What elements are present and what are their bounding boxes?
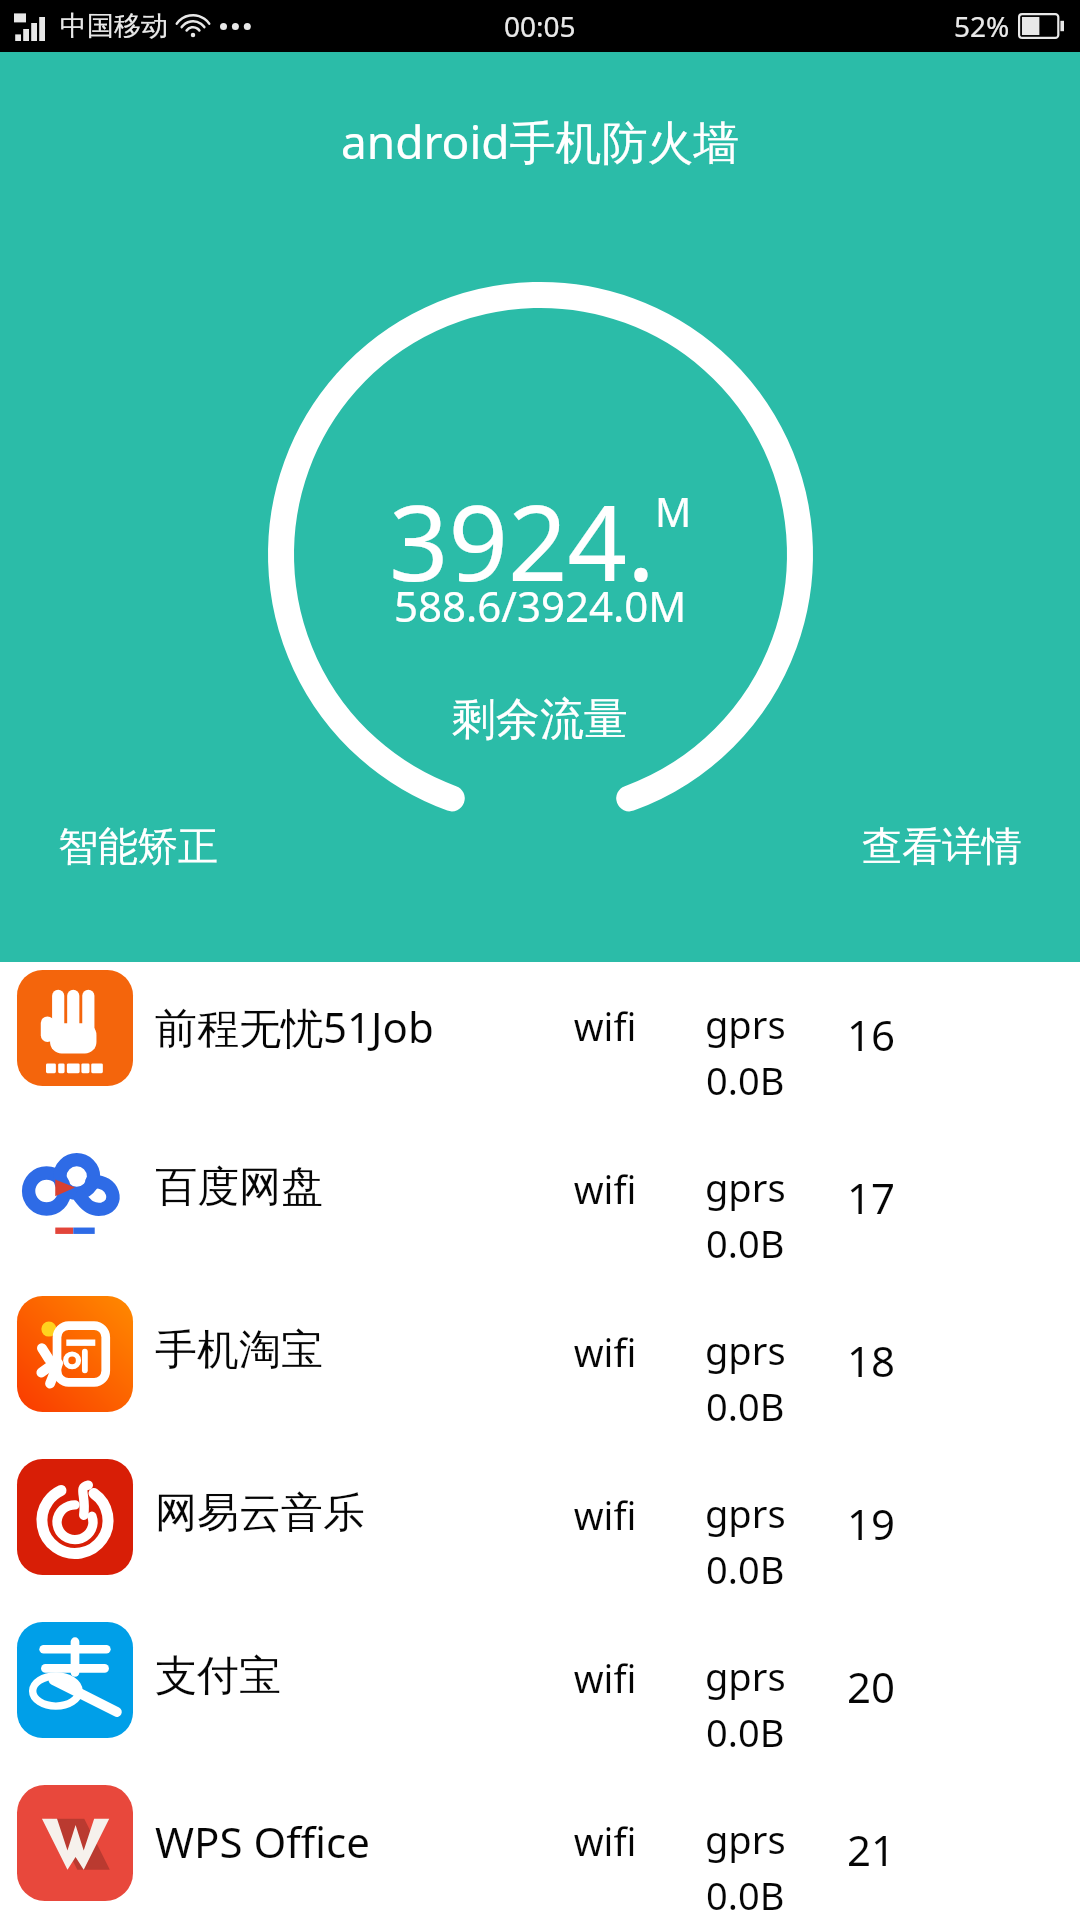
- button[interactable]: 百度网盘: [0, 1125, 1080, 1288]
- staticText: 支付宝: [155, 1650, 281, 1703]
- staticText: 19: [847, 1495, 896, 1552]
- staticText: 百度网盘: [155, 1161, 323, 1214]
- staticText: 0.0B: [706, 1380, 785, 1432]
- staticText: 3924.: [389, 470, 655, 612]
- staticText: gprs: [705, 998, 786, 1050]
- staticText: 20: [847, 1658, 896, 1715]
- staticText: 0.0B: [706, 1217, 785, 1269]
- staticText: 00:05: [504, 7, 576, 45]
- button[interactable]: 网易云音乐: [0, 1451, 1080, 1614]
- button[interactable]: 智能矫正: [24, 807, 252, 885]
- button[interactable]: WPS Office: [0, 1777, 1080, 1920]
- staticText: 手机淘宝: [155, 1324, 323, 1377]
- staticText: wifi: [545, 1489, 665, 1541]
- staticText: 0.0B: [706, 1869, 785, 1920]
- staticText: 0.0B: [706, 1054, 785, 1106]
- staticText: 查看详情: [862, 821, 1022, 871]
- staticText: 智能矫正: [58, 821, 218, 871]
- staticText: gprs: [705, 1487, 786, 1539]
- staticText: 网易云音乐: [155, 1487, 365, 1540]
- staticText: 21: [847, 1821, 896, 1878]
- button[interactable]: 前程无忧51Job: [0, 962, 1080, 1125]
- button[interactable]: 手机淘宝: [0, 1288, 1080, 1451]
- staticText: gprs: [705, 1650, 786, 1702]
- button[interactable]: 支付宝: [0, 1614, 1080, 1777]
- staticText: 16: [847, 1006, 896, 1063]
- button[interactable]: 查看详情: [828, 807, 1056, 885]
- staticText: 17: [847, 1169, 896, 1226]
- staticText: wifi: [545, 1326, 665, 1378]
- staticText: 中国移动: [60, 9, 168, 43]
- staticText: wifi: [545, 1163, 665, 1215]
- staticText: wifi: [545, 1000, 665, 1052]
- staticText: 52%: [954, 7, 1010, 45]
- staticText: gprs: [705, 1813, 786, 1865]
- staticText: 18: [847, 1332, 896, 1389]
- staticText: 0.0B: [706, 1543, 785, 1595]
- staticText: 前程无忧51Job: [155, 998, 434, 1055]
- staticText: wifi: [545, 1815, 665, 1867]
- staticText: android手机防火墙: [341, 110, 740, 173]
- staticText: 0.0B: [706, 1706, 785, 1758]
- staticText: gprs: [705, 1324, 786, 1376]
- staticText: wifi: [545, 1652, 665, 1704]
- staticText: 剩余流量: [452, 692, 628, 747]
- staticText: gprs: [705, 1161, 786, 1213]
- staticText: M: [655, 484, 692, 538]
- staticText: 588.6/3924.0M: [394, 577, 687, 634]
- staticText: WPS Office: [155, 1813, 370, 1870]
